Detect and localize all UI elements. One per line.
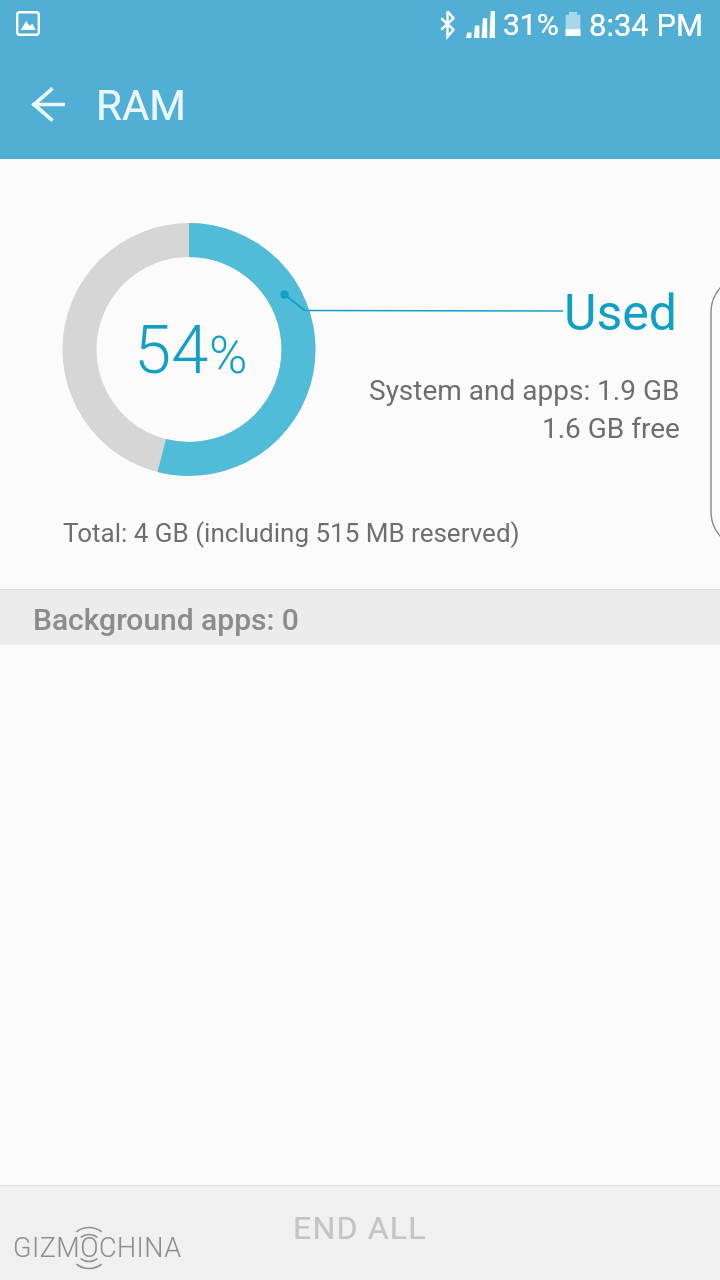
button[interactable]: End all background apps (0, 1185, 720, 1280)
staticText: 8:34 PM (589, 7, 704, 43)
button[interactable]: Navigate up (12, 68, 84, 140)
staticText: System and apps: 1.9 GB (369, 374, 680, 407)
staticText: 1.6 GB free (542, 412, 680, 445)
button[interactable]: Background apps: 0 (0, 589, 720, 645)
staticText: Background apps: 0 (33, 602, 299, 637)
staticText: 31% (503, 7, 559, 42)
staticText: RAM (96, 81, 186, 130)
staticText: Used (564, 284, 677, 343)
staticText: Total: 4 GB (including 515 MB reserved) (63, 518, 520, 548)
staticText: GIZMOCHINA (13, 1232, 182, 1264)
staticText: 54 (134, 311, 209, 390)
staticText: % (209, 325, 248, 386)
staticText: END ALL (293, 1209, 427, 1247)
